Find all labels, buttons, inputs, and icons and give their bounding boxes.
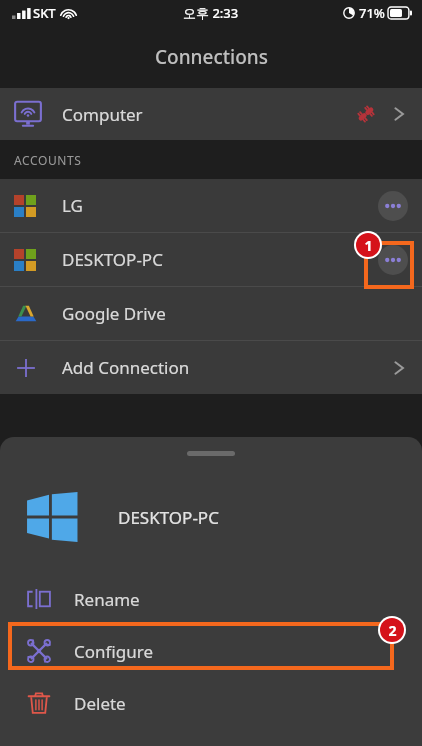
staticText: 1 [364,236,373,255]
staticText: Configure [74,640,153,663]
staticText: 오후 2:33 [183,4,239,22]
button[interactable]: Google Drive [0,287,422,340]
button[interactable]: LG [0,179,422,232]
button[interactable]: Delete [0,677,422,729]
staticText: Connections [155,44,268,70]
button[interactable]: Computer [0,88,422,140]
button[interactable]: More options for DESKTOP-PC [378,245,408,275]
staticText: DESKTOP-PC [118,506,219,529]
staticText: SKT [33,4,56,22]
button[interactable]: Configure [0,625,422,677]
staticText: Add Connection [62,356,190,379]
staticText: Google Drive [62,302,166,325]
button[interactable]: DESKTOP-PC [0,233,422,286]
staticText: ACCOUNTS [14,152,82,168]
staticText: LG [62,194,83,217]
button[interactable]: Rename [0,573,422,625]
staticText: Delete [74,692,126,715]
staticText: 2 [388,621,397,640]
button[interactable]: More options for LG [378,191,408,221]
button[interactable]: Add Connection [0,341,422,394]
staticText: Computer [62,103,143,126]
staticText: 71% [359,4,385,22]
staticText: DESKTOP-PC [62,248,163,271]
staticText: Rename [74,588,140,611]
